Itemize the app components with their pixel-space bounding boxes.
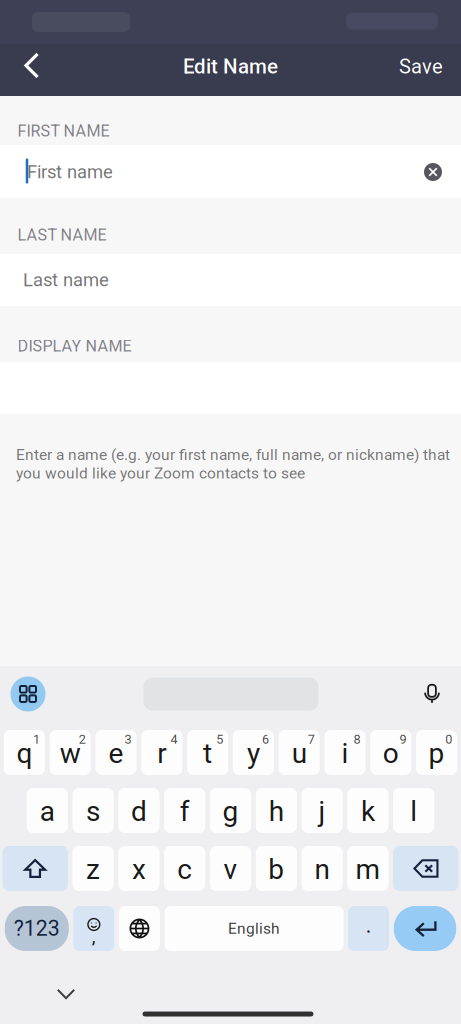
button[interactable]: Keyboard toolbar	[10, 676, 45, 711]
button[interactable]: p	[416, 730, 457, 775]
staticText: t	[203, 737, 212, 770]
staticText: 6	[262, 732, 269, 747]
staticText: k	[361, 795, 375, 828]
button[interactable]: h	[256, 788, 297, 833]
staticText: 1	[33, 732, 40, 747]
staticText: 8	[354, 732, 361, 747]
staticText: ?123	[14, 916, 60, 941]
button[interactable]: Space	[164, 906, 343, 951]
button[interactable]: v	[210, 846, 251, 891]
staticText: m	[355, 853, 380, 886]
staticText: x	[132, 853, 146, 886]
staticText: LAST NAME	[17, 225, 106, 244]
staticText: f	[180, 795, 190, 828]
button[interactable]: Save	[388, 44, 454, 88]
button[interactable]: u	[279, 730, 320, 775]
button[interactable]: i	[324, 730, 366, 775]
button[interactable]: Enter	[394, 906, 456, 951]
button[interactable]: x	[118, 846, 159, 891]
button[interactable]: a	[27, 788, 68, 833]
staticText: b	[268, 853, 284, 886]
staticText: g	[222, 795, 238, 828]
button[interactable]: c	[164, 846, 205, 891]
button[interactable]: Hide keyboard	[48, 979, 84, 1009]
staticText: ,	[92, 926, 96, 947]
staticText: 3	[125, 732, 132, 747]
staticText: a	[40, 795, 55, 828]
staticText: Enter a name (e.g. your first name, full…	[16, 446, 450, 482]
staticText: c	[177, 853, 192, 886]
staticText: d	[131, 795, 147, 828]
button[interactable]: o	[370, 730, 411, 775]
button[interactable]: f	[164, 788, 205, 833]
button[interactable]: z	[72, 846, 114, 891]
button[interactable]: l	[393, 788, 434, 833]
button[interactable]: Period	[348, 906, 389, 951]
staticText: e	[108, 737, 123, 770]
button[interactable]: m	[347, 846, 388, 891]
button[interactable]: j	[301, 788, 343, 833]
staticText: 9	[399, 732, 406, 747]
staticText: Edit Name	[183, 54, 278, 79]
button[interactable]: d	[118, 788, 159, 833]
button[interactable]: Voice input	[415, 677, 449, 711]
staticText: 0	[445, 732, 452, 747]
staticText: s	[86, 795, 100, 828]
staticText: n	[315, 853, 330, 886]
button[interactable]: Backspace	[393, 846, 459, 891]
staticText: v	[223, 853, 237, 886]
button[interactable]: n	[301, 846, 343, 891]
staticText: u	[292, 737, 307, 770]
button[interactable]: b	[256, 846, 297, 891]
staticText: p	[429, 737, 445, 770]
button[interactable]: g	[210, 788, 251, 833]
button[interactable]: k	[347, 788, 388, 833]
staticText: r	[157, 737, 166, 770]
staticText: 4	[170, 732, 177, 747]
staticText: i	[341, 737, 348, 770]
button[interactable]: w	[50, 730, 91, 775]
staticText: 2	[79, 732, 86, 747]
staticText: 5	[216, 732, 223, 747]
button[interactable]: Back	[8, 43, 56, 87]
button[interactable]: e	[95, 730, 137, 775]
staticText: .	[366, 913, 372, 938]
button[interactable]: Shift	[2, 846, 68, 891]
staticText: j	[319, 795, 326, 828]
staticText: 7	[308, 732, 315, 747]
button[interactable]: Clear text	[415, 154, 451, 190]
staticText: FIRST NAME	[17, 121, 109, 140]
staticText: q	[16, 737, 32, 770]
staticText: First name	[27, 161, 113, 183]
button[interactable]: Numbers and symbols	[5, 906, 69, 951]
staticText: Last name	[23, 269, 109, 291]
staticText: y	[247, 737, 260, 770]
staticText: DISPLAY NAME	[17, 336, 131, 355]
staticText: w	[60, 737, 81, 770]
button[interactable]: s	[72, 788, 114, 833]
button[interactable]: y	[233, 730, 274, 775]
button[interactable]: t	[187, 730, 228, 775]
button[interactable]: Emoji	[73, 906, 114, 951]
staticText: Save	[399, 55, 443, 78]
staticText: z	[86, 853, 100, 886]
staticText: l	[410, 795, 417, 828]
staticText: English	[228, 919, 280, 937]
button[interactable]: Change keyboard	[119, 906, 160, 951]
staticText: h	[269, 795, 284, 828]
staticText: o	[383, 737, 399, 770]
button[interactable]: q	[4, 730, 45, 775]
button[interactable]: r	[141, 730, 182, 775]
